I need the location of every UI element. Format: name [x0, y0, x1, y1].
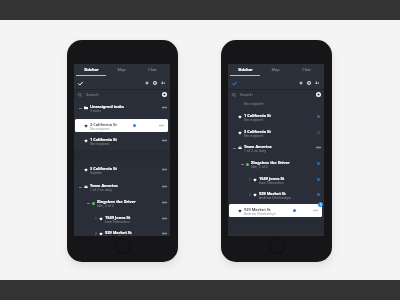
button[interactable]: Settings — [153, 81, 157, 85]
staticText: 929 Market St — [259, 191, 286, 196]
button[interactable]: Unassigned tasks — [74, 100, 170, 115]
button[interactable]: Map — [106, 64, 137, 77]
staticText: 2 — [249, 193, 251, 197]
button[interactable]: More options — [162, 105, 167, 110]
staticText: 1 of 2 on duty — [244, 148, 266, 153]
button[interactable]: Select all — [232, 81, 237, 86]
staticText: No recipient — [244, 101, 264, 106]
staticText: Search — [240, 92, 253, 97]
button[interactable]: Add — [145, 81, 149, 85]
button[interactable]: Filter — [162, 92, 167, 97]
button[interactable]: Map — [260, 64, 291, 77]
staticText: 3 tasks — [90, 108, 102, 113]
button[interactable]: More options — [162, 216, 167, 221]
staticText: Team America — [90, 183, 118, 188]
button[interactable]: Team America — [228, 140, 324, 155]
button[interactable]: 1 California St — [228, 109, 324, 124]
button[interactable]: Account — [315, 81, 319, 85]
button[interactable]: More options — [162, 167, 167, 172]
staticText: Chat — [302, 67, 311, 72]
staticText: Xingchen the Driver — [97, 199, 136, 204]
staticText: 1 — [95, 217, 97, 221]
staticText: Ivan Tolmachev — [105, 219, 130, 224]
button[interactable]: Search — [228, 89, 324, 100]
staticText: 1 — [320, 203, 322, 207]
button[interactable]: 2 California St — [75, 119, 168, 132]
button[interactable]: Chat — [291, 64, 322, 77]
staticText: 1 California St — [244, 113, 271, 118]
button[interactable]: More options — [316, 145, 321, 150]
staticText: 1 of 2 on duty — [90, 187, 112, 192]
staticText: 1549 Jones St — [105, 215, 131, 220]
staticText: No recipient — [244, 117, 264, 122]
button[interactable]: Xingchen the Driver — [228, 156, 324, 171]
button[interactable]: 1 — [74, 211, 170, 226]
button[interactable]: Account — [161, 81, 165, 85]
button[interactable]: 1 California St — [74, 133, 170, 148]
staticText: 3 California St — [244, 129, 271, 134]
staticText: Idle, 2 of 2 — [97, 203, 114, 208]
staticText: 2 California St — [90, 122, 117, 127]
button[interactable]: 1 — [228, 172, 324, 187]
staticText: Search — [86, 92, 99, 97]
staticText: No recipient — [90, 126, 110, 131]
staticText: No recipient — [90, 141, 110, 146]
button[interactable]: More options — [162, 231, 167, 236]
staticText: Sidebar — [84, 67, 99, 72]
staticText: Idle, 2 of 2 — [251, 164, 268, 169]
button[interactable]: Sidebar — [230, 64, 260, 77]
staticText: Subtitle — [90, 170, 103, 175]
button[interactable]: Filter — [316, 92, 321, 97]
staticText: Andrew Cherkashyn — [259, 195, 291, 200]
staticText: Team America — [244, 144, 272, 149]
staticText: Unassigned tasks — [90, 104, 124, 109]
button[interactable]: More options — [162, 200, 167, 205]
staticText: Xingchen the Driver — [251, 160, 290, 165]
staticText: 2 — [95, 232, 97, 236]
staticText: 1 — [249, 178, 251, 182]
staticText: Chat — [148, 67, 157, 72]
button[interactable]: More options — [159, 123, 164, 128]
button[interactable]: Settings — [307, 81, 311, 85]
button[interactable]: Add — [299, 81, 303, 85]
staticText: 929 Market St — [105, 230, 132, 235]
button[interactable]: 2 — [228, 187, 324, 202]
button[interactable]: More options — [162, 184, 167, 189]
staticText: 3 California St — [90, 166, 117, 171]
staticText: Map — [117, 67, 126, 72]
staticText: Ivan Tolmachev — [259, 180, 284, 185]
button[interactable]: 929 Market St — [229, 204, 322, 217]
button[interactable]: 3 California St — [228, 125, 324, 140]
button[interactable]: Select all — [78, 81, 83, 86]
staticText: 1549 Jones St — [259, 176, 285, 181]
button[interactable]: Chat — [137, 64, 168, 77]
button[interactable]: Search — [74, 89, 170, 100]
staticText: Sidebar — [238, 67, 253, 72]
staticText: 929 Market St — [244, 207, 271, 212]
button[interactable]: 3 California St — [74, 162, 170, 177]
button[interactable]: Xingchen the Driver — [74, 195, 170, 210]
staticText: Andrew Cherkashyn — [105, 234, 137, 236]
staticText: No recipient — [244, 133, 264, 138]
staticText: Andrew Cherkashyn — [244, 211, 276, 216]
button[interactable]: Sidebar — [76, 64, 106, 77]
button[interactable]: Team America — [74, 179, 170, 194]
staticText: Map — [271, 67, 280, 72]
staticText: 1 California St — [90, 137, 117, 142]
button[interactable]: More options — [162, 138, 167, 143]
button[interactable]: 2 — [74, 226, 170, 236]
button[interactable]: More options — [313, 208, 318, 213]
